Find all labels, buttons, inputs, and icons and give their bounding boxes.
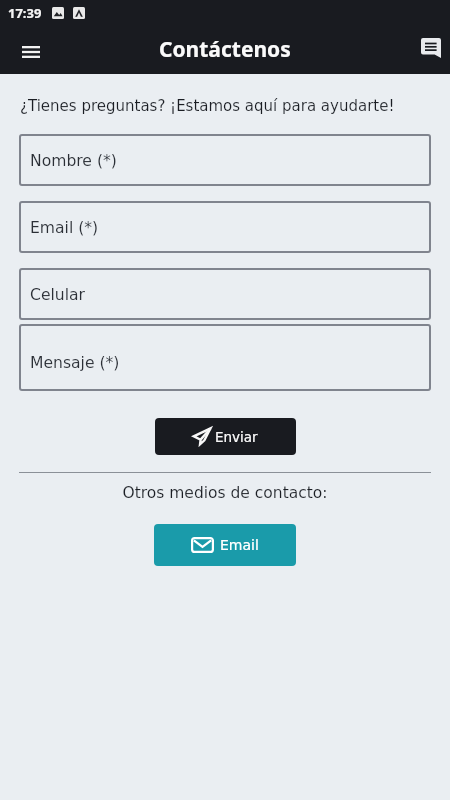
button[interactable]: Mensaje (*) xyxy=(19,324,431,391)
staticText: Email (*) xyxy=(30,219,99,237)
button[interactable]: Celular xyxy=(19,268,431,320)
staticText: Celular xyxy=(30,286,85,304)
staticText: 17:39 xyxy=(8,4,42,22)
button[interactable]: Open navigation menu xyxy=(10,31,52,73)
button[interactable]: Email (*) xyxy=(19,201,431,253)
staticText: Otros medios de contacto: xyxy=(0,484,450,502)
button[interactable]: Enviar xyxy=(155,418,296,455)
staticText: Mensaje (*) xyxy=(30,354,120,372)
staticText: Nombre (*) xyxy=(30,152,117,170)
button[interactable]: Email xyxy=(154,524,296,566)
staticText: Enviar xyxy=(215,429,258,445)
staticText: Contáctenos xyxy=(159,35,291,64)
staticText: Email xyxy=(220,537,259,553)
button[interactable]: Chat xyxy=(410,27,450,69)
staticText: ¿Tienes preguntas? ¡Estamos aquí para ay… xyxy=(20,97,395,114)
button[interactable]: Nombre (*) xyxy=(19,134,431,186)
